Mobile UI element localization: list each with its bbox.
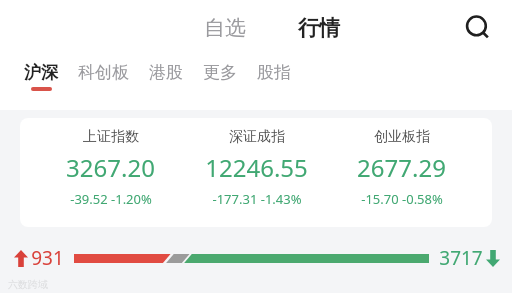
button[interactable]: 上证指数 bbox=[20, 118, 492, 227]
button[interactable]: 深证成指 bbox=[201, 128, 312, 208]
button[interactable]: 931 bbox=[0, 241, 512, 275]
staticText: 行情 bbox=[298, 15, 340, 41]
button[interactable]: 港股 bbox=[139, 58, 193, 95]
staticText: 科创板 bbox=[78, 62, 129, 83]
staticText: 931 bbox=[31, 245, 64, 271]
button[interactable]: 沪深 bbox=[14, 58, 68, 95]
staticText: -39.52 -1.20% bbox=[70, 190, 152, 208]
staticText: 沪深 bbox=[24, 62, 58, 83]
button[interactable]: 创业板指 bbox=[353, 128, 450, 208]
staticText: 创业板指 bbox=[374, 128, 430, 146]
staticText: 股指 bbox=[257, 62, 291, 83]
staticText: 六数跨域 bbox=[8, 278, 48, 291]
staticText: -177.31 -1.43% bbox=[212, 190, 302, 208]
staticText: 深证成指 bbox=[229, 128, 285, 146]
staticText: -15.70 -0.58% bbox=[361, 190, 443, 208]
staticText: 上证指数 bbox=[83, 128, 139, 146]
button[interactable]: 股指 bbox=[247, 58, 301, 95]
staticText: 更多 bbox=[203, 62, 237, 83]
staticText: 港股 bbox=[149, 62, 183, 83]
staticText: 自选 bbox=[204, 15, 246, 41]
staticText: 3717 bbox=[439, 245, 483, 271]
button[interactable]: 上证指数 bbox=[62, 128, 159, 208]
button[interactable]: 自选 bbox=[196, 11, 254, 45]
button[interactable]: 更多 bbox=[193, 58, 247, 95]
staticText: 12246.55 bbox=[205, 151, 308, 184]
button[interactable]: 行情 bbox=[290, 11, 348, 45]
staticText: 2677.29 bbox=[357, 151, 446, 184]
staticText: 3267.20 bbox=[66, 151, 155, 184]
button[interactable]: 科创板 bbox=[68, 58, 139, 95]
button[interactable]: Search bbox=[458, 8, 498, 48]
